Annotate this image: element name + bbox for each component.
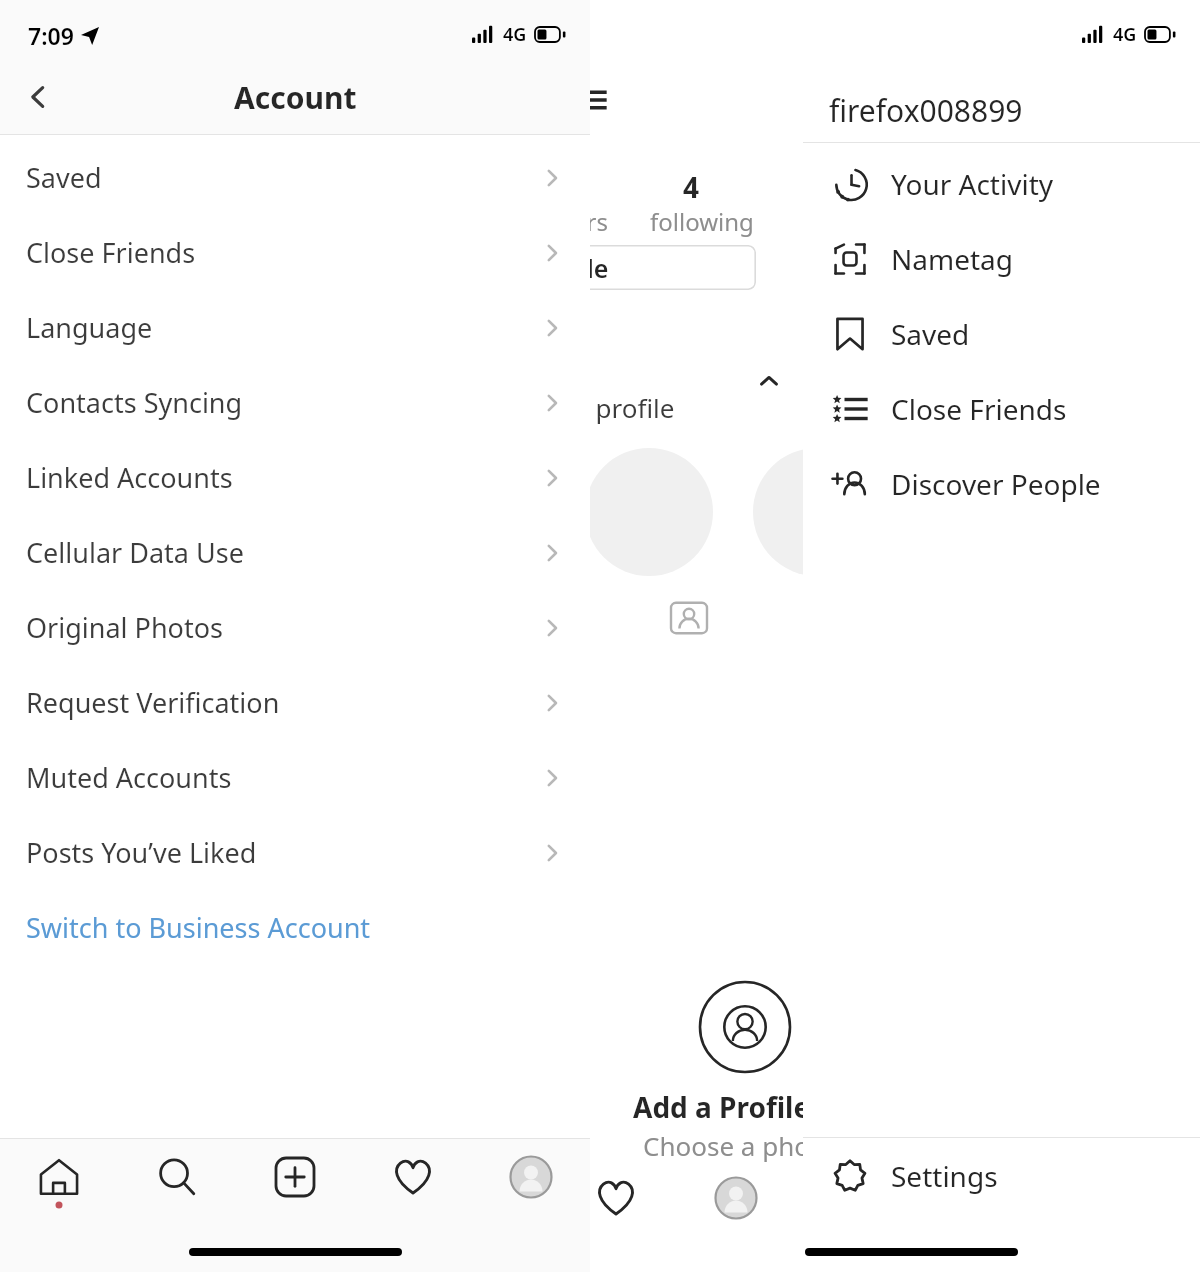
staticText: Close Friends	[26, 234, 542, 271]
button[interactable]: Settings	[803, 1138, 1200, 1214]
staticText: Settings	[891, 1157, 998, 1195]
staticText: ofile	[590, 251, 609, 285]
button[interactable]: Create	[236, 1137, 354, 1217]
button[interactable]: ofile	[590, 245, 756, 290]
staticText: Saved	[26, 159, 542, 196]
staticText: Contacts Syncing	[26, 384, 542, 421]
button[interactable]: Back	[8, 67, 68, 127]
button[interactable]: Saved	[0, 140, 590, 215]
staticText: Request Verification	[26, 684, 542, 721]
staticText: firefox008899	[829, 90, 1023, 131]
staticText: 4	[683, 168, 700, 206]
button[interactable]: Switch to Business Account	[0, 890, 590, 965]
staticText: Choose a phot	[643, 1128, 803, 1163]
staticText: Posts You’ve Liked	[26, 834, 542, 871]
button[interactable]: Search	[118, 1137, 236, 1217]
button[interactable]: Activity	[590, 1162, 652, 1234]
staticText: ers	[590, 205, 608, 238]
button[interactable]: Muted Accounts	[0, 740, 590, 815]
button[interactable]: Language	[0, 290, 590, 365]
staticText: Linked Accounts	[26, 459, 542, 496]
button[interactable]: Menu	[590, 78, 612, 122]
button[interactable]: Discover People	[803, 446, 1200, 521]
staticText: Account	[234, 77, 357, 118]
button[interactable]: Posts You’ve Liked	[0, 815, 590, 890]
button[interactable]: Linked Accounts	[0, 440, 590, 515]
staticText: Switch to Business Account	[26, 909, 371, 946]
button[interactable]: Home	[0, 1137, 118, 1217]
button[interactable]: Your Activity	[803, 146, 1200, 221]
staticText: Nametag	[891, 240, 1013, 278]
staticText: 4G	[503, 22, 527, 47]
staticText: Close Friends	[891, 390, 1067, 428]
button[interactable]: Saved	[803, 296, 1200, 371]
staticText: Your Activity	[891, 165, 1054, 203]
button[interactable]: Original Photos	[0, 590, 590, 665]
button[interactable]: Activity	[354, 1137, 472, 1217]
staticText: 4G	[1113, 22, 1137, 47]
staticText: following	[650, 205, 754, 238]
staticText: Muted Accounts	[26, 759, 542, 796]
staticText: Cellular Data Use	[26, 534, 542, 571]
staticText: Language	[26, 309, 542, 346]
staticText: Discover People	[891, 465, 1101, 503]
staticText: Original Photos	[26, 609, 542, 646]
button[interactable]: Contacts Syncing	[0, 365, 590, 440]
button[interactable]: Profile	[700, 1162, 772, 1234]
staticText: 7:09	[28, 20, 74, 51]
button[interactable]: Request Verification	[0, 665, 590, 740]
button[interactable]: Close Friends	[803, 371, 1200, 446]
button[interactable]: Nametag	[803, 221, 1200, 296]
staticText: Saved	[891, 315, 970, 353]
button[interactable]: Close Friends	[0, 215, 590, 290]
button[interactable]: Cellular Data Use	[0, 515, 590, 590]
staticText: r profile	[590, 390, 675, 425]
button[interactable]: Profile	[472, 1137, 590, 1217]
staticText: Add a Profile P	[633, 1088, 803, 1126]
